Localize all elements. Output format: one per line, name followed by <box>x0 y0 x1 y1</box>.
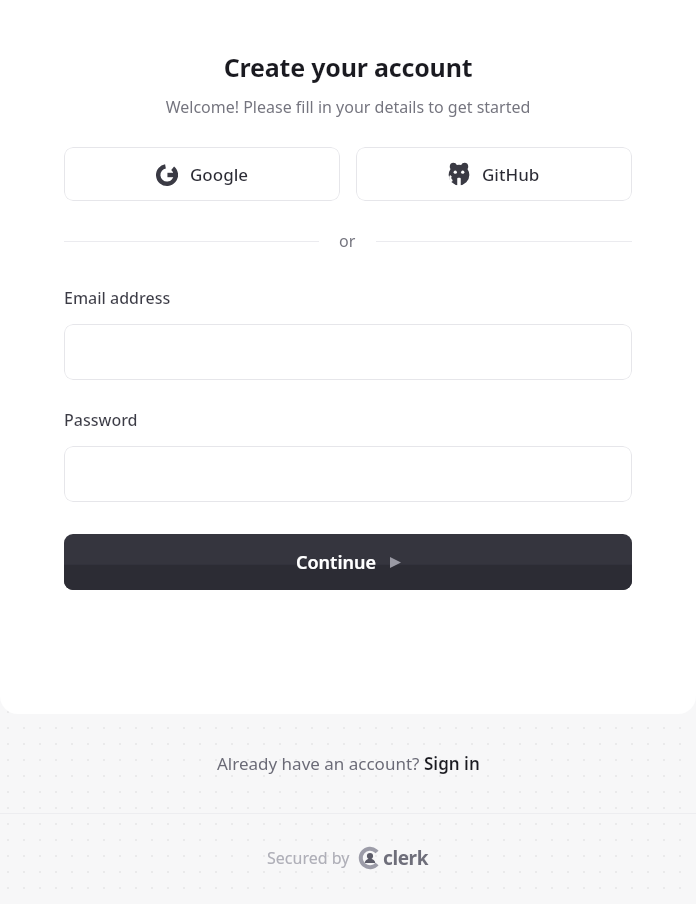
button[interactable]: Continue <box>64 534 632 590</box>
button[interactable] <box>64 446 632 502</box>
button[interactable]: Already have an account? <box>207 744 490 783</box>
staticText: Email address <box>64 287 171 309</box>
button[interactable]: Google <box>64 147 340 201</box>
staticText: GitHub <box>482 163 540 186</box>
button[interactable]: GitHub <box>356 147 632 201</box>
staticText: clerk <box>383 845 429 871</box>
staticText: Continue <box>296 550 376 575</box>
staticText: Sign in <box>424 752 480 775</box>
staticText: Google <box>190 163 249 186</box>
button[interactable]: Secured by <box>259 839 437 877</box>
staticText: Already have an account? <box>217 752 424 775</box>
staticText: Welcome! Please fill in your details to … <box>64 96 632 118</box>
staticText: Create your account <box>64 50 632 84</box>
staticText: Secured by <box>267 847 350 869</box>
staticText: Password <box>64 409 138 431</box>
button[interactable] <box>64 324 632 380</box>
staticText: or <box>339 230 356 252</box>
